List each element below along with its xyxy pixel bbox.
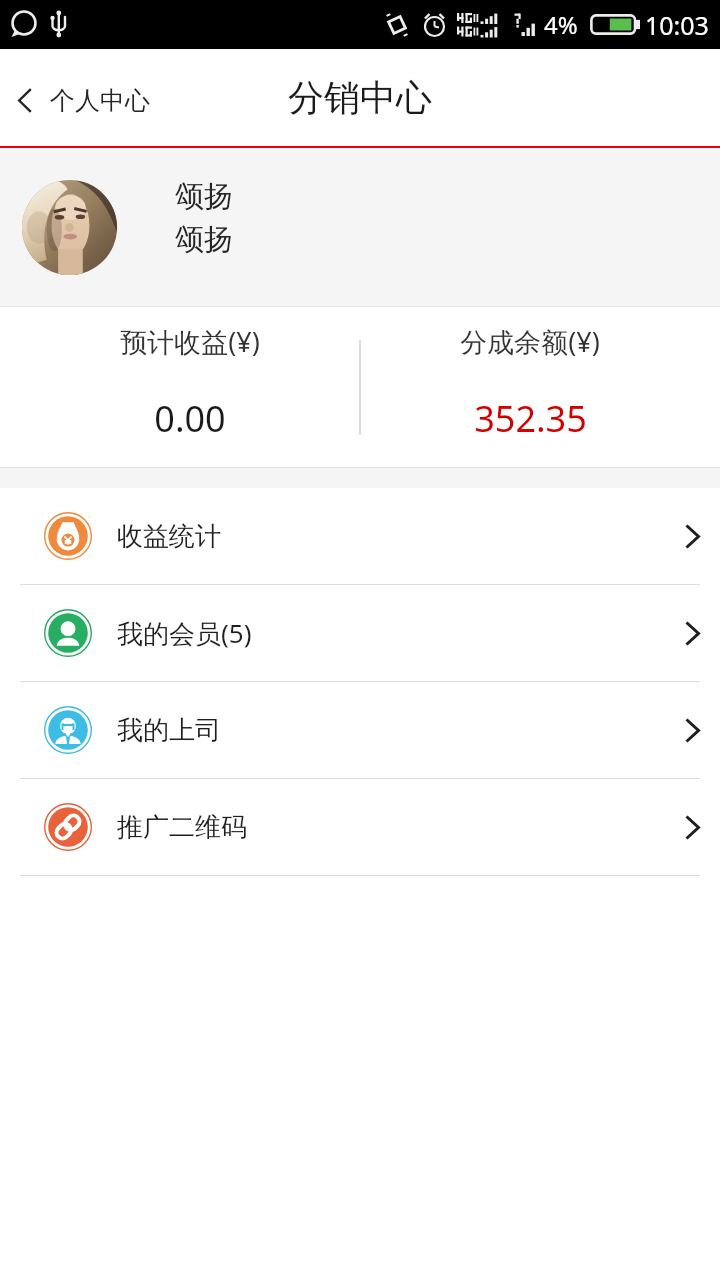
button[interactable]: 预计收益(¥): [20, 307, 360, 467]
staticText: 推广二维码: [117, 811, 247, 844]
staticText: 4%: [544, 8, 578, 41]
button[interactable]: 个人中心: [6, 69, 160, 126]
staticText: 个人中心: [50, 85, 150, 116]
staticText: 颂扬: [175, 178, 233, 215]
button[interactable]: 推广二维码: [0, 779, 720, 876]
staticText: 我的上司: [117, 714, 221, 747]
button[interactable]: 我的会员(5): [0, 585, 720, 682]
button[interactable]: 我的上司: [0, 682, 720, 779]
staticText: 0.00: [154, 394, 226, 443]
button[interactable]: Avatar: [0, 148, 720, 306]
staticText: 收益统计: [117, 520, 221, 553]
staticText: 分销中心: [288, 75, 432, 120]
button[interactable]: 分成余额(¥): [360, 307, 700, 467]
staticText: 分成余额(¥): [460, 323, 600, 360]
staticText: 预计收益(¥): [120, 323, 260, 360]
staticText: 10:03: [645, 8, 709, 42]
staticText: 我的会员(5): [117, 615, 252, 651]
button[interactable]: 收益统计: [0, 488, 720, 585]
staticText: 352.35: [474, 394, 587, 443]
other: Avatar: [22, 180, 117, 275]
staticText: 颂扬: [175, 221, 233, 258]
